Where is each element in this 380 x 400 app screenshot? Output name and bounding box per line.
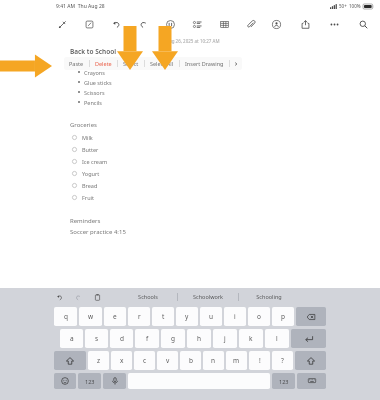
button[interactable]: Undo: [110, 18, 123, 31]
button[interactable]: Delete: [90, 57, 117, 70]
button[interactable]: Emoji: [54, 373, 76, 389]
button[interactable]: f: [135, 329, 159, 348]
staticText: !: [259, 356, 261, 365]
button[interactable]: Redo: [73, 292, 83, 302]
button[interactable]: Paste: [92, 292, 102, 302]
button[interactable]: Attach: [245, 18, 258, 31]
staticText: q: [64, 312, 68, 321]
button[interactable]: Schools: [118, 288, 177, 305]
button[interactable]: b: [180, 351, 201, 370]
button[interactable]: Share: [299, 18, 312, 31]
button[interactable]: s: [85, 329, 108, 348]
button[interactable]: Add person: [270, 18, 283, 31]
button[interactable]: n: [203, 351, 224, 370]
staticText: v: [166, 356, 170, 365]
staticText: 100%: [349, 3, 361, 9]
button[interactable]: g: [161, 329, 185, 348]
staticText: Soccer practice 4:15: [70, 228, 126, 236]
button[interactable]: Paste: [64, 57, 89, 70]
button[interactable]: v: [157, 351, 178, 370]
button[interactable]: Yogurt: [70, 167, 380, 179]
button[interactable]: Shift: [54, 351, 86, 370]
button[interactable]: Ice cream: [70, 155, 380, 167]
button[interactable]: Select All: [145, 57, 179, 70]
staticText: j: [224, 334, 226, 343]
button[interactable]: c: [134, 351, 155, 370]
staticText: e: [113, 312, 117, 321]
button[interactable]: p: [272, 307, 294, 326]
button[interactable]: i: [224, 307, 246, 326]
button[interactable]: Compose: [83, 18, 96, 31]
staticText: Binder: [84, 59, 102, 66]
button[interactable]: h: [187, 329, 211, 348]
staticText: Reminders: [70, 217, 101, 225]
button[interactable]: Microphone: [103, 373, 126, 389]
button[interactable]: j: [213, 329, 237, 348]
button[interactable]: d: [110, 329, 133, 348]
staticText: Back to School: [70, 47, 117, 56]
staticText: Pencils: [84, 99, 102, 106]
staticText: 50+: [339, 3, 347, 9]
button[interactable]: Hide keyboard: [297, 373, 326, 389]
button[interactable]: Insert Drawing: [180, 57, 229, 70]
button[interactable]: Format: [164, 18, 177, 31]
button[interactable]: 123: [272, 373, 295, 389]
staticText: Insert Drawing: [185, 60, 224, 67]
button[interactable]: More: [328, 18, 341, 31]
button[interactable]: Shift: [295, 351, 326, 370]
staticText: Glue sticks: [84, 79, 112, 86]
button[interactable]: ?: [272, 351, 293, 370]
button[interactable]: Table: [218, 18, 231, 31]
button[interactable]: Butter: [70, 143, 380, 155]
button[interactable]: Crayons: [70, 67, 380, 77]
button[interactable]: o: [248, 307, 270, 326]
staticText: m: [233, 356, 240, 365]
button[interactable]: z: [88, 351, 109, 370]
button[interactable]: u: [200, 307, 222, 326]
button[interactable]: e: [104, 307, 126, 326]
button[interactable]: t: [152, 307, 174, 326]
button[interactable]: Schooling: [239, 288, 299, 305]
button[interactable]: Bread: [70, 179, 380, 191]
button[interactable]: Return: [291, 329, 326, 348]
button[interactable]: Markup: [56, 18, 69, 31]
button[interactable]: Scissors: [70, 87, 380, 97]
button[interactable]: l: [265, 329, 289, 348]
button[interactable]: a: [60, 329, 83, 348]
button[interactable]: Milk: [70, 131, 380, 143]
button[interactable]: !: [249, 351, 270, 370]
button[interactable]: Search: [357, 18, 370, 31]
button[interactable]: m: [226, 351, 247, 370]
button[interactable]: Pencils: [70, 97, 380, 107]
button[interactable]: Undo: [54, 292, 64, 302]
button[interactable]: Select: [118, 57, 144, 70]
button[interactable]: More menu items: [230, 57, 242, 70]
staticText: i: [234, 312, 236, 321]
button[interactable]: y: [176, 307, 198, 326]
staticText: Schoolwork: [193, 293, 223, 300]
button[interactable]: Redo: [137, 18, 150, 31]
staticText: z: [97, 356, 101, 365]
button[interactable]: k: [239, 329, 263, 348]
staticText: r: [138, 312, 141, 321]
staticText: u: [209, 312, 214, 321]
staticText: h: [197, 334, 202, 343]
button[interactable]: Backspace: [296, 307, 326, 326]
button[interactable]: r: [128, 307, 150, 326]
button[interactable]: Glue sticks: [70, 77, 380, 87]
button[interactable]: x: [111, 351, 132, 370]
button[interactable]: Checklist: [191, 18, 204, 31]
button[interactable]: Schoolwork: [178, 288, 238, 305]
button[interactable]: w: [79, 307, 102, 326]
staticText: Select All: [150, 60, 174, 67]
button[interactable]: 123: [78, 373, 101, 389]
button[interactable]: Binder: [70, 57, 380, 67]
staticText: Paste: [69, 60, 84, 67]
staticText: Aug 26, 2025 at 10:27 AM: [166, 38, 220, 44]
staticText: d: [120, 334, 124, 343]
staticText: Butter: [82, 146, 99, 153]
staticText: k: [249, 334, 253, 343]
button[interactable]: Fruit: [70, 191, 380, 203]
button[interactable]: q: [54, 307, 77, 326]
